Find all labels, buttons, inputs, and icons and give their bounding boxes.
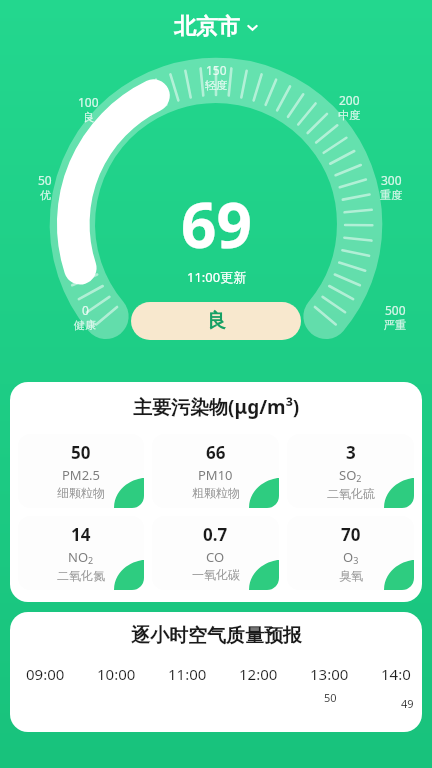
staticText: 粗颗粒物 [192,485,240,500]
button[interactable]: 3 [287,434,414,508]
staticText: 12:00 [239,664,278,684]
button[interactable]: 北京市 [166,9,267,45]
staticText: 11:00 [168,664,207,684]
staticText: 69 [181,182,252,266]
staticText: 50 [324,690,337,705]
staticText: 14 [71,523,91,546]
staticText: O3 [343,548,359,567]
staticText: 11:00更新 [187,268,247,286]
staticText: 09:00 [26,664,65,684]
staticText: SO2 [339,466,362,485]
staticText: 49 [401,696,414,711]
staticText: 逐小时空气质量预报 [131,624,302,648]
staticText: 0 [82,302,89,318]
staticText: 500 [385,302,406,318]
staticText: 200 [339,92,360,108]
staticText: 100 [78,94,99,110]
button[interactable]: 良 [131,302,301,340]
staticText: 健康 [74,318,96,332]
staticText: 主要污染物(μg/m³) [133,394,300,420]
staticText: 70 [341,523,361,546]
staticText: 0.7 [203,523,228,546]
button[interactable]: 14 [18,516,144,590]
staticText: 臭氧 [339,568,363,583]
staticText: 一氧化碳 [192,567,240,582]
staticText: 66 [206,441,226,464]
staticText: 北京市 [174,13,240,41]
staticText: PM10 [198,466,233,484]
staticText: 150 [206,62,227,78]
staticText: 重度 [380,188,402,202]
staticText: 良 [83,110,94,124]
staticText: 14:0 [381,664,411,684]
staticText: 轻度 [205,78,227,92]
staticText: 二氧化硫 [327,486,375,501]
staticText: 细颗粒物 [57,485,105,500]
staticText: 3 [346,441,356,464]
staticText: PM2.5 [62,466,101,484]
staticText: 50 [71,441,91,464]
button[interactable]: 70 [287,516,414,590]
staticText: 优 [40,188,51,202]
staticText: 二氧化氮 [57,568,105,583]
staticText: 严重 [384,318,406,332]
staticText: CO [206,548,225,566]
button[interactable]: 66 [152,434,279,508]
button[interactable]: 50 [18,434,144,508]
button[interactable]: 0.7 [152,516,279,590]
staticText: 10:00 [97,664,136,684]
staticText: NO2 [68,548,94,567]
staticText: 13:00 [310,664,349,684]
staticText: 良 [207,309,226,333]
staticText: 300 [381,172,402,188]
staticText: 中度 [338,108,360,122]
staticText: 50 [38,172,52,188]
